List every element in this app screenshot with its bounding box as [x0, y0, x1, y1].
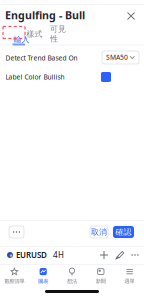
staticText: 樣式: [26, 29, 42, 39]
staticText: 可見性: [50, 24, 66, 44]
staticText: 選單: [125, 278, 135, 284]
button[interactable]: 輸入: [2, 26, 27, 43]
staticText: 4H: [53, 250, 64, 260]
staticText: Detect Trend Based On: [5, 53, 77, 62]
button[interactable]: 選單: [115, 265, 144, 287]
staticText: Label Color Bullish: [5, 72, 64, 81]
staticText: 想法: [67, 278, 77, 284]
button[interactable]: More chart options: [128, 248, 142, 262]
staticText: 確認: [115, 227, 131, 237]
staticText: 輸入: [13, 35, 29, 44]
button[interactable]: EURUSD: [7, 248, 61, 262]
button[interactable]: Draw: [113, 248, 127, 262]
staticText: EURUSD: [16, 250, 47, 260]
button[interactable]: 觀察清單: [0, 265, 29, 287]
staticText: 圖表: [38, 278, 48, 284]
staticText: 取消: [91, 227, 107, 237]
button[interactable]: 取消: [90, 226, 108, 238]
button[interactable]: 想法: [58, 265, 86, 287]
button[interactable]: More: [9, 226, 24, 238]
button[interactable]: Close: [123, 8, 139, 24]
button[interactable]: Bullish label colour: [101, 72, 111, 82]
button[interactable]: 圖表: [29, 265, 58, 287]
button[interactable]: Add: [97, 248, 111, 262]
staticText: 觀察清單: [4, 278, 24, 284]
button[interactable]: SMA50: [102, 51, 139, 64]
button[interactable]: 樣式: [26, 28, 43, 40]
button[interactable]: 確認: [113, 226, 134, 238]
staticText: Engulfing - Bull: [5, 8, 85, 22]
staticText: 新聞: [96, 278, 106, 284]
button[interactable]: 新聞: [86, 265, 115, 287]
button[interactable]: 可見性: [47, 28, 69, 40]
staticText: SMA50: [106, 53, 128, 62]
